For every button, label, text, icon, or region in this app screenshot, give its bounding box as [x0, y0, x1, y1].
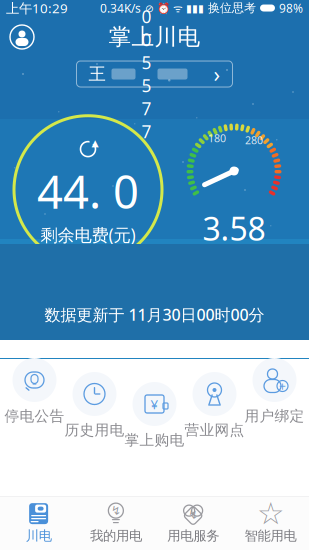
button[interactable]: 王 — [76, 61, 232, 87]
staticText: 用户绑定 — [244, 407, 304, 425]
staticText: 280 — [245, 133, 263, 147]
staticText: 0.34K/s — [100, 0, 141, 16]
staticText: 44. 0 — [37, 161, 139, 221]
staticText: 180 — [208, 131, 226, 145]
staticText: 005577 — [141, 5, 151, 143]
staticText: 剩余电费(元) — [40, 223, 135, 246]
staticText: ☆ — [257, 496, 284, 531]
button[interactable]: ↯ — [77, 497, 154, 550]
staticText: › — [213, 60, 220, 88]
button[interactable]: 停电公告 — [4, 358, 64, 425]
staticText: ▲ — [91, 138, 98, 148]
staticText: 98% — [279, 0, 303, 16]
button[interactable]: + — [244, 358, 304, 425]
staticText: 历史用电 — [64, 421, 124, 439]
staticText: 换位思考 — [208, 1, 256, 15]
staticText: 用电服务 — [167, 528, 219, 544]
staticText: 川电 — [26, 528, 52, 544]
staticText: 上午10:29 — [6, 0, 68, 17]
staticText: 我的用电 — [90, 528, 142, 544]
button[interactable]: 营业网点 — [184, 358, 244, 425]
staticText: 智能用电 — [244, 528, 296, 544]
staticText: ↯ — [111, 504, 121, 517]
button[interactable]: ↯ — [154, 497, 232, 550]
button[interactable]: 账户 — [4, 19, 40, 55]
staticText: ⊘ ⏰ ᯤ ▮▮▮ — [145, 1, 204, 15]
staticText: ¥ — [150, 395, 158, 413]
staticText: 3.58 — [202, 207, 265, 249]
staticText: 营业网点 — [184, 421, 244, 439]
staticText: + — [279, 378, 286, 394]
staticText: 掌上川电 — [108, 23, 200, 51]
button[interactable]: 历史用电 — [64, 358, 124, 425]
staticText: 掌上购电 — [124, 431, 184, 449]
staticText: ↯ — [188, 508, 198, 521]
button[interactable]: ☆ — [232, 497, 309, 550]
button[interactable]: ¥ — [124, 358, 184, 425]
button[interactable]: 川电 — [0, 497, 77, 550]
staticText: 王 — [88, 63, 105, 85]
staticText: 数据更新于 11月30日00时00分 — [44, 304, 264, 325]
staticText: 停电公告 — [4, 407, 64, 425]
